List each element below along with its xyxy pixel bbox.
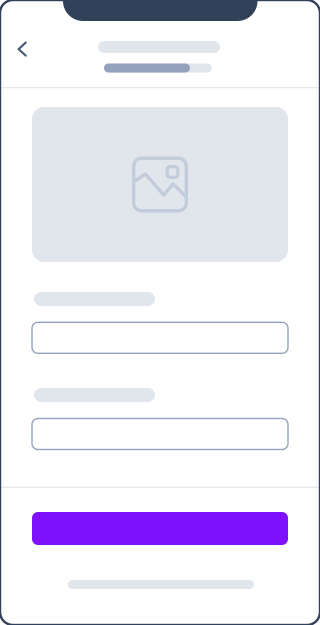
button[interactable]: Submit [32, 512, 288, 545]
button[interactable]: Back [6, 33, 38, 65]
